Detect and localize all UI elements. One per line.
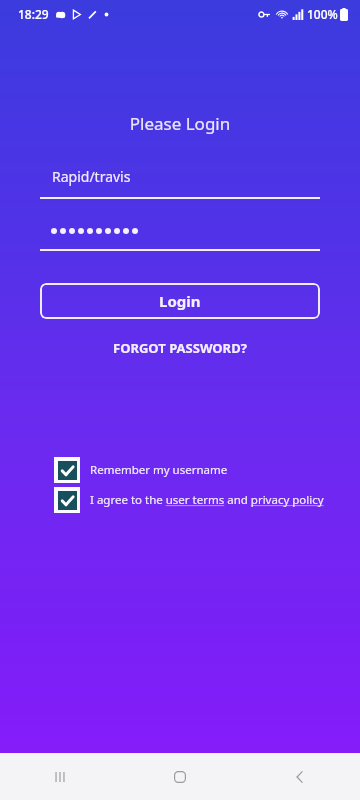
button[interactable]: Recent apps (0, 753, 120, 800)
staticText: Login (159, 291, 201, 311)
staticText: 18:29 (18, 6, 49, 22)
button[interactable]: Checkbox, checked (54, 457, 80, 483)
button[interactable] (40, 223, 320, 251)
staticText: Please Login (0, 112, 360, 135)
button[interactable]: Back (240, 753, 360, 800)
button[interactable]: Checkbox, checked (54, 457, 360, 483)
button[interactable]: Rapid/travis (40, 167, 320, 199)
button[interactable]: Checkbox, checked (54, 487, 80, 513)
button[interactable]: Home (120, 753, 240, 800)
button[interactable]: FORGOT PASSWORD? (101, 335, 259, 361)
button[interactable]: Checkbox, checked (54, 487, 360, 513)
staticText: Remember my username (90, 462, 228, 478)
staticText: 100% (307, 6, 338, 22)
staticText: FORGOT PASSWORD? (113, 339, 247, 357)
staticText: Rapid/travis (52, 167, 131, 186)
button[interactable]: Login (40, 283, 320, 319)
staticText: I agree to the user terms and privacy po… (90, 492, 324, 508)
